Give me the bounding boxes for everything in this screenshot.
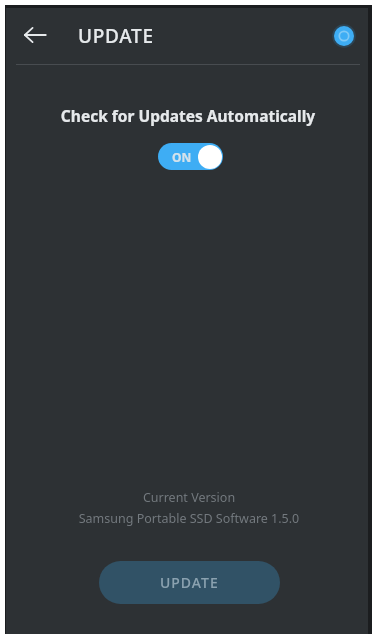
staticText: Check for Updates Automatically [7,105,369,126]
button[interactable]: Refresh [329,21,359,51]
staticText: Current Version [8,489,370,506]
button[interactable]: ON [158,143,223,170]
button[interactable]: Back [15,15,55,55]
button[interactable]: UPDATE [99,561,280,604]
staticText: UPDATE [78,23,154,49]
staticText: ON [172,149,192,165]
staticText: Samsung Portable SSD Software 1.5.0 [8,510,370,527]
staticText: UPDATE [160,573,219,592]
